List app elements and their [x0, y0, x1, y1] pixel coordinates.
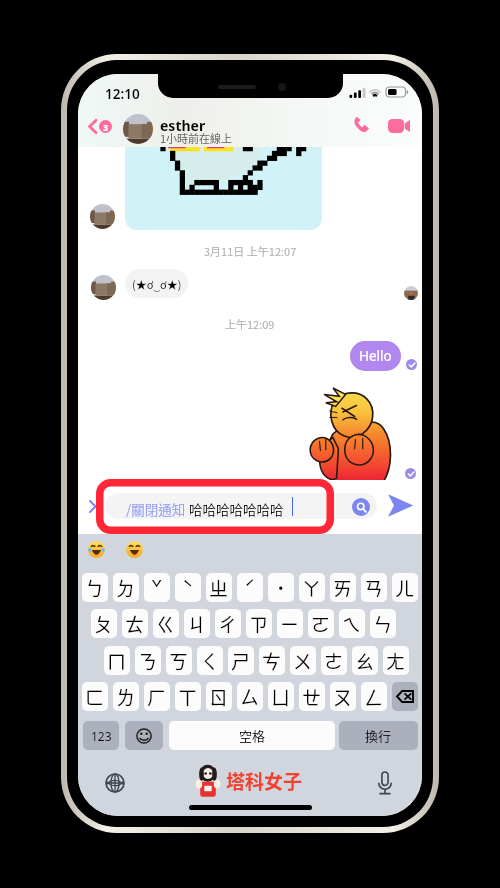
- button[interactable]: Call: [349, 113, 372, 137]
- button[interactable]: ㄢ: [361, 573, 387, 602]
- button[interactable]: ㄑ: [197, 646, 223, 675]
- button[interactable]: ㄙ: [237, 682, 263, 711]
- button[interactable]: ㄈ: [82, 682, 108, 711]
- button[interactable]: ˋ: [175, 573, 201, 602]
- staticText: ㄢ: [364, 574, 384, 602]
- staticText: esther: [160, 116, 206, 135]
- button[interactable]: ㄕ: [228, 646, 254, 675]
- staticText: ㄙ: [240, 683, 260, 711]
- button[interactable]: ㄔ: [215, 609, 241, 638]
- staticText: ㄈ: [85, 683, 105, 711]
- staticText: 3: [103, 121, 109, 133]
- staticText: 12:10: [105, 85, 140, 103]
- staticText: ㄑ: [200, 647, 220, 675]
- staticText: ㄓ: [209, 574, 229, 602]
- staticText: ㄎ: [169, 647, 189, 675]
- staticText: ㄇ: [107, 647, 127, 675]
- staticText: 上午12:09: [225, 316, 275, 332]
- button[interactable]: ˙: [268, 573, 294, 602]
- staticText: ㄏ: [147, 683, 167, 711]
- staticText: ㄅ: [85, 574, 105, 602]
- staticText: 塔科女子: [226, 767, 303, 795]
- button[interactable]: ˇ: [144, 573, 170, 602]
- button[interactable]: ㄉ: [113, 573, 139, 602]
- button[interactable]: ㄡ: [330, 682, 356, 711]
- button[interactable]: ㄏ: [144, 682, 170, 711]
- button[interactable]: [105, 493, 377, 519]
- staticText: ㄐ: [187, 610, 207, 638]
- button[interactable]: ㄋ: [135, 646, 161, 675]
- button[interactable]: ㄆ: [91, 609, 117, 638]
- staticText: /關閉通知: [126, 499, 186, 519]
- button[interactable]: 換行: [339, 721, 418, 750]
- button[interactable]: Dictate: [378, 771, 392, 795]
- staticText: ㄜ: [324, 647, 344, 675]
- staticText: ㄖ: [209, 683, 229, 711]
- button[interactable]: [392, 682, 418, 711]
- button[interactable]: ㄐ: [184, 609, 210, 638]
- button[interactable]: ˊ: [237, 573, 263, 602]
- staticText: 哈哈哈哈哈哈哈: [186, 499, 284, 519]
- button[interactable]: ㄚ: [299, 573, 325, 602]
- button[interactable]: ㄣ: [370, 609, 396, 638]
- staticText: ˙: [276, 574, 286, 602]
- button[interactable]: ㄌ: [113, 682, 139, 711]
- staticText: ㄔ: [218, 610, 238, 638]
- button[interactable]: ㄨ: [290, 646, 316, 675]
- button[interactable]: ㄊ: [122, 609, 148, 638]
- button[interactable]: ㄝ: [299, 682, 325, 711]
- button[interactable]: ㄘ: [259, 646, 285, 675]
- button[interactable]: ㄜ: [321, 646, 347, 675]
- button[interactable]: ㄖ: [206, 682, 232, 711]
- button[interactable]: ㄠ: [352, 646, 378, 675]
- button[interactable]: ㄦ: [392, 573, 418, 602]
- button[interactable]: [125, 721, 163, 750]
- staticText: ㄡ: [333, 683, 353, 711]
- button[interactable]: Hello: [350, 341, 401, 371]
- staticText: ㄨ: [293, 647, 313, 675]
- staticText: (★ơ‿ơ★): [132, 276, 182, 292]
- button[interactable]: [126, 541, 143, 558]
- button[interactable]: Back: [85, 113, 115, 140]
- button[interactable]: ㄇ: [104, 646, 130, 675]
- button[interactable]: [88, 541, 105, 558]
- button[interactable]: 123: [83, 721, 119, 750]
- button[interactable]: ㄤ: [383, 646, 409, 675]
- staticText: ㄞ: [333, 574, 353, 602]
- button[interactable]: (★ơ‿ơ★): [125, 269, 188, 298]
- button[interactable]: ㄛ: [308, 609, 334, 638]
- staticText: 123: [91, 728, 112, 744]
- button[interactable]: Video call: [385, 116, 413, 136]
- staticText: ㄥ: [364, 683, 384, 711]
- staticText: ㄛ: [311, 610, 331, 638]
- button[interactable]: ㄧ: [277, 609, 303, 638]
- staticText: 3月11日 上午12:07: [204, 243, 297, 259]
- staticText: ㄊ: [125, 610, 145, 638]
- button[interactable]: ㄎ: [166, 646, 192, 675]
- button[interactable]: ㄒ: [175, 682, 201, 711]
- button[interactable]: Search: [352, 498, 370, 516]
- button[interactable]: ㄗ: [246, 609, 272, 638]
- staticText: ㄕ: [231, 647, 251, 675]
- button[interactable]: Change keyboard: [105, 773, 125, 793]
- staticText: ㄍ: [156, 610, 176, 638]
- button[interactable]: ㄞ: [330, 573, 356, 602]
- button[interactable]: ㄅ: [82, 573, 108, 602]
- button[interactable]: ㄟ: [339, 609, 365, 638]
- button[interactable]: 空格: [169, 721, 335, 750]
- button[interactable]: Send: [389, 495, 412, 516]
- staticText: ㄌ: [116, 683, 136, 711]
- button[interactable]: ㄩ: [268, 682, 294, 711]
- staticText: 空格: [239, 726, 266, 745]
- button[interactable]: ㄍ: [153, 609, 179, 638]
- staticText: ㄦ: [395, 574, 415, 602]
- staticText: ㄋ: [138, 647, 158, 675]
- staticText: ㄤ: [386, 647, 406, 675]
- button[interactable]: ㄥ: [361, 682, 387, 711]
- staticText: ㄣ: [373, 610, 393, 638]
- staticText: ㄆ: [94, 610, 114, 638]
- button[interactable]: ㄓ: [206, 573, 232, 602]
- staticText: 換行: [365, 726, 392, 745]
- staticText: ㄧ: [280, 610, 300, 638]
- staticText: ㄠ: [355, 647, 375, 675]
